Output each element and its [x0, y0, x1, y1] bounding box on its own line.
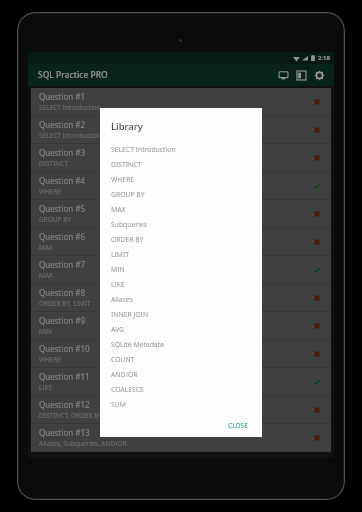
- staticText: Question #10: [39, 343, 90, 354]
- staticText: Question #8: [39, 287, 86, 298]
- staticText: DISTINCT, ORDER BY, LIMIT: [39, 411, 123, 420]
- staticText: SELECT Introduction: [39, 131, 101, 140]
- staticText: Question #13: [39, 427, 90, 438]
- staticText: ORDER BY, LIMIT: [39, 299, 91, 308]
- staticText: Question #7: [39, 259, 86, 270]
- staticText: INNER JOIN: [111, 310, 149, 319]
- staticText: SQL Practice PRO: [38, 69, 108, 81]
- staticText: COALESCE: [111, 385, 144, 394]
- button[interactable]: Question #2: [31, 116, 331, 143]
- button[interactable]: DISTINCT: [111, 157, 252, 172]
- staticText: AND/OR: [111, 370, 138, 379]
- button[interactable]: Question #12: [31, 396, 331, 423]
- staticText: Question #6: [39, 231, 86, 242]
- staticText: GROUP BY: [111, 190, 145, 199]
- button[interactable]: SELECT Introduction: [111, 142, 252, 157]
- staticText: WHERE: [39, 355, 62, 364]
- button[interactable]: AVG: [111, 322, 252, 337]
- button[interactable]: SQLite Metadata: [111, 337, 252, 352]
- button[interactable]: Question #13: [31, 424, 331, 451]
- staticText: MAX: [111, 205, 126, 214]
- staticText: GROUP BY: [39, 215, 72, 224]
- staticText: DISTINCT: [39, 159, 68, 168]
- staticText: LIKE: [39, 383, 53, 392]
- staticText: Question #11: [39, 371, 90, 382]
- staticText: COUNT: [111, 355, 135, 364]
- button[interactable]: Aliases: [111, 292, 252, 307]
- staticText: Question #1: [39, 91, 86, 102]
- staticText: ORDER BY: [111, 235, 144, 244]
- staticText: CLOSE: [228, 421, 248, 430]
- button[interactable]: INNER JOIN: [111, 307, 252, 322]
- button[interactable]: COALESCE: [111, 382, 252, 397]
- button[interactable]: CLOSE: [224, 417, 252, 434]
- staticText: Aliases: [111, 295, 134, 304]
- button[interactable]: Settings: [310, 66, 328, 84]
- button[interactable]: ORDER BY: [111, 232, 252, 247]
- staticText: MAX: [39, 243, 53, 252]
- button[interactable]: SUM: [111, 397, 252, 412]
- staticText: Question #4: [39, 175, 86, 186]
- button[interactable]: LIMIT: [111, 247, 252, 262]
- staticText: SUM: [111, 400, 126, 409]
- staticText: LIKE: [111, 280, 125, 289]
- button[interactable]: Question #8: [31, 284, 331, 311]
- button[interactable]: MIN: [111, 262, 252, 277]
- button[interactable]: Question #9: [31, 312, 331, 339]
- button[interactable]: Question #5: [31, 200, 331, 227]
- staticText: Aliases, Subqueries, AND/OR: [39, 439, 127, 448]
- button[interactable]: AND/OR: [111, 367, 252, 382]
- staticText: Question #5: [39, 203, 86, 214]
- staticText: WHERE: [39, 187, 62, 196]
- staticText: Question #12: [39, 399, 90, 410]
- staticText: Question #9: [39, 315, 86, 326]
- staticText: Question #3: [39, 147, 86, 158]
- button[interactable]: Library: [292, 66, 310, 84]
- button[interactable]: COUNT: [111, 352, 252, 367]
- staticText: 2:18: [318, 54, 330, 62]
- staticText: MIN: [111, 265, 125, 274]
- button[interactable]: Subqueries: [111, 217, 252, 232]
- button[interactable]: Question #7: [31, 256, 331, 283]
- staticText: Question #2: [39, 119, 86, 130]
- staticText: SELECT Introduction: [39, 103, 101, 112]
- staticText: LIMIT: [111, 250, 130, 259]
- button[interactable]: Question #11: [31, 368, 331, 395]
- button[interactable]: MAX: [111, 202, 252, 217]
- staticText: Subqueries: [111, 220, 147, 229]
- button[interactable]: WHERE: [111, 172, 252, 187]
- button[interactable]: Cast: [274, 66, 292, 84]
- staticText: WHERE: [111, 175, 135, 184]
- staticText: SQLite Metadata: [111, 340, 164, 349]
- staticText: DISTINCT: [111, 160, 142, 169]
- button[interactable]: Question #10: [31, 340, 331, 367]
- button[interactable]: Question #3: [31, 144, 331, 171]
- staticText: Library: [111, 120, 143, 133]
- button[interactable]: GROUP BY: [111, 187, 252, 202]
- staticText: MIN: [39, 327, 53, 336]
- button[interactable]: LIKE: [111, 277, 252, 292]
- staticText: AVG: [111, 325, 125, 334]
- staticText: SELECT Introduction: [111, 145, 176, 154]
- button[interactable]: Question #4: [31, 172, 331, 199]
- button[interactable]: Question #6: [31, 228, 331, 255]
- button[interactable]: Question #1: [31, 88, 331, 115]
- staticText: MAX: [39, 271, 53, 280]
